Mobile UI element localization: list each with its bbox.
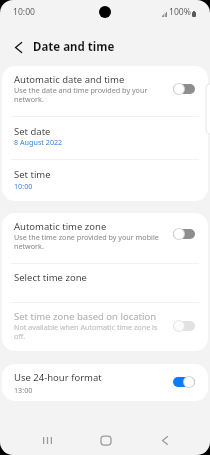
staticText: Set date bbox=[14, 125, 51, 138]
staticText: 13:00 bbox=[14, 385, 33, 395]
staticText: Set time bbox=[14, 168, 51, 181]
staticText: Automatic time zone bbox=[14, 220, 107, 233]
button[interactable]: Select time zone bbox=[2, 264, 208, 302]
button[interactable]: Back bbox=[9, 38, 27, 56]
staticText: Not available when Automatic time zone i… bbox=[14, 322, 160, 341]
staticText: Use the date and time provided by your n… bbox=[14, 85, 160, 104]
staticText: 10:00 bbox=[14, 181, 33, 191]
button[interactable]: Toggle bbox=[173, 228, 195, 240]
staticText: Automatic date and time bbox=[14, 73, 125, 86]
staticText: Use 24-hour format bbox=[14, 371, 102, 384]
button[interactable]: Toggle bbox=[173, 320, 195, 332]
staticText: Date and time bbox=[33, 39, 115, 55]
staticText: 100% bbox=[169, 6, 191, 18]
button[interactable]: Set time zone based on location bbox=[2, 303, 208, 351]
staticText: Select time zone bbox=[14, 271, 87, 284]
button[interactable]: Automatic date and time bbox=[2, 66, 208, 116]
button[interactable]: Toggle bbox=[173, 83, 195, 95]
button[interactable]: Toggle bbox=[173, 376, 195, 388]
button[interactable]: Automatic time zone bbox=[2, 213, 208, 263]
staticText: 10:00 bbox=[13, 6, 35, 18]
staticText: Set time zone based on location bbox=[14, 310, 157, 323]
button[interactable]: Back bbox=[150, 425, 180, 455]
staticText: 8 August 2022 bbox=[14, 137, 63, 147]
staticText: Use the time zone provided by your mobil… bbox=[14, 232, 160, 251]
button[interactable]: Use 24-hour format bbox=[2, 364, 208, 401]
button[interactable]: Set date bbox=[2, 117, 208, 159]
button[interactable]: Home bbox=[91, 425, 121, 455]
button[interactable]: Recent apps bbox=[32, 425, 62, 455]
button[interactable]: Set time bbox=[2, 160, 208, 201]
